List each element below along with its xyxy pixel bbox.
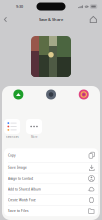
button[interactable]: Home bbox=[88, 14, 98, 25]
button[interactable]: Back bbox=[1, 14, 9, 24]
staticText: Assign to Contact bbox=[8, 176, 33, 181]
button[interactable]: AirDrop bbox=[13, 89, 23, 99]
button[interactable]: Save to Files bbox=[4, 206, 98, 216]
staticText: Add to Shared Album bbox=[8, 187, 41, 191]
button[interactable]: Create Watch Face bbox=[4, 195, 98, 205]
button[interactable]: Photos bbox=[79, 89, 89, 99]
button[interactable]: Assign to Contact bbox=[4, 173, 98, 184]
button[interactable]: Add to Shared Album bbox=[4, 184, 98, 194]
staticText: Save to Files bbox=[8, 209, 28, 213]
staticText: Save Image bbox=[8, 166, 27, 170]
button[interactable]: Messages bbox=[46, 89, 56, 99]
staticText: Save & Share bbox=[39, 17, 63, 22]
button[interactable]: Copy bbox=[4, 148, 98, 162]
staticText: Reminders bbox=[6, 135, 19, 139]
staticText: More bbox=[31, 135, 37, 139]
button[interactable]: Save Image bbox=[4, 162, 98, 173]
staticText: 9:30 bbox=[16, 4, 23, 9]
staticText: Create Watch Face bbox=[8, 198, 36, 202]
button[interactable]: More bbox=[26, 119, 42, 139]
button[interactable]: Reminders bbox=[4, 119, 20, 139]
staticText: Copy bbox=[8, 153, 16, 157]
